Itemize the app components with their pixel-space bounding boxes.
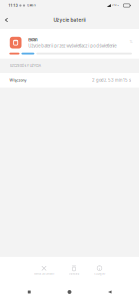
staticText: LTE+ [112, 4, 119, 7]
staticText: Włączony [10, 78, 27, 82]
button[interactable]: Back [99, 284, 121, 300]
staticText: Użycie baterii [53, 17, 85, 23]
button[interactable]: Wymuś zatrzymanie [34, 266, 54, 275]
staticText: Użycie baterii przez wyświetlacz i podśw… [28, 43, 116, 48]
staticText: Szczegóły [94, 272, 105, 275]
staticText: Ekran [28, 37, 37, 42]
staticText: % [129, 40, 132, 44]
button[interactable]: Back [0, 11, 13, 29]
staticText: 12,8kB/s [26, 4, 35, 7]
staticText: Odinstaluj [68, 272, 79, 275]
staticText: Wymuś zatrzymanie [34, 272, 54, 275]
button[interactable]: Home [58, 284, 80, 300]
button[interactable]: Szczegóły [94, 266, 105, 275]
staticText: SZCZEGÓŁY UŻYCIA [10, 64, 41, 68]
staticText: 11:13 [8, 3, 17, 8]
staticText: 2 godz. 53 min 15 s [92, 78, 131, 83]
button[interactable]: Odinstaluj [68, 266, 79, 275]
button[interactable]: Recents [18, 284, 40, 300]
